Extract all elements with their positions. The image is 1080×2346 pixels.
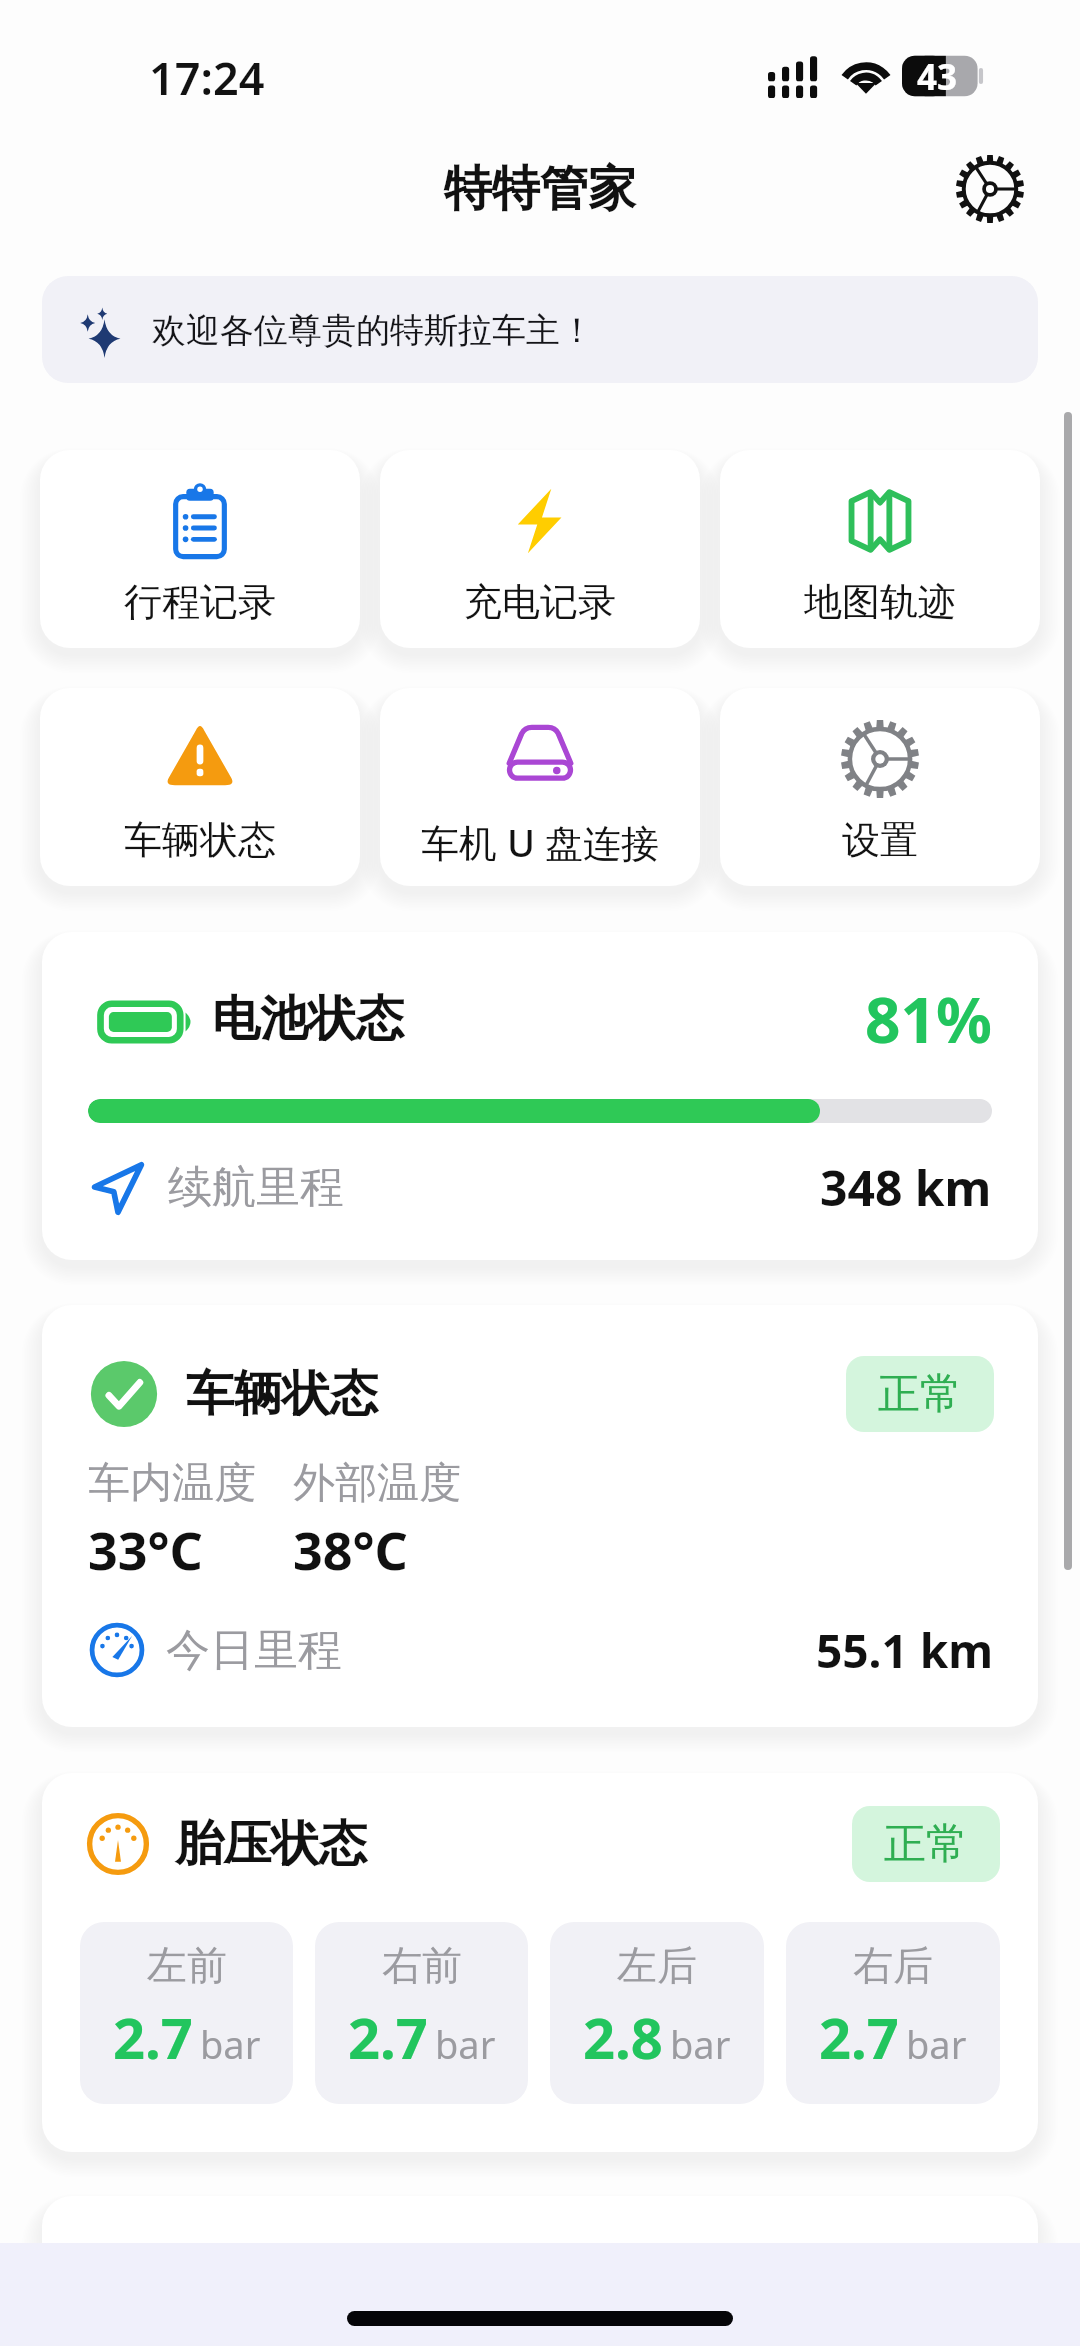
staticText: 43 <box>917 53 958 101</box>
staticText: bar <box>670 2018 731 2070</box>
staticText: 车机 U 盘连接 <box>421 816 659 868</box>
button[interactable]: 充电记录 <box>380 450 700 648</box>
staticText: bar <box>200 2018 261 2070</box>
staticText: bar <box>435 2018 496 2070</box>
staticText: 充电记录 <box>464 578 616 626</box>
staticText: 行程记录 <box>124 578 276 626</box>
staticText: 车内温度 <box>88 1457 256 1510</box>
staticText: 车辆状态 <box>124 816 276 864</box>
staticText: 欢迎各位尊贵的特斯拉车主！ <box>152 309 594 352</box>
staticText: 81% <box>865 977 992 1049</box>
staticText: bar <box>906 2018 967 2070</box>
staticText: 设置 <box>842 816 918 864</box>
staticText: 2.8 <box>583 1999 663 2075</box>
staticText: 17:24 <box>149 47 265 108</box>
button[interactable]: 行程记录 <box>40 450 360 648</box>
button[interactable]: 车机 U 盘连接 <box>380 688 700 886</box>
staticText: 地图轨迹 <box>804 578 956 626</box>
staticText: 车辆状态 <box>186 1364 378 1424</box>
staticText: 左后 <box>617 1940 697 1990</box>
staticText: 胎压状态 <box>175 1814 367 1874</box>
staticText: 正常 <box>884 1818 968 1871</box>
staticText: 右后 <box>853 1940 933 1990</box>
button[interactable]: 欢迎各位尊贵的特斯拉车主！ <box>42 276 1038 383</box>
staticText: 外部温度 <box>293 1457 461 1510</box>
button[interactable]: 地图轨迹 <box>720 450 1040 648</box>
staticText: 今日里程 <box>166 1623 342 1678</box>
staticText: 正常 <box>878 1368 962 1421</box>
staticText: 38°C <box>293 1514 408 1585</box>
button[interactable]: 设置 <box>720 688 1040 886</box>
staticText: 续航里程 <box>168 1160 344 1215</box>
staticText: 2.7 <box>348 1999 428 2075</box>
staticText: 特特管家 <box>444 159 636 219</box>
button[interactable]: Settings <box>943 143 1037 235</box>
staticText: 2.7 <box>113 1999 193 2075</box>
staticText: 2.7 <box>819 1999 899 2075</box>
button[interactable]: 车辆状态 <box>40 688 360 886</box>
staticText: 电池状态 <box>212 989 404 1049</box>
staticText: 左前 <box>147 1940 227 1990</box>
staticText: 55.1 km <box>816 1619 994 1682</box>
staticText: 右前 <box>382 1940 462 1990</box>
staticText: 348 km <box>820 1155 992 1220</box>
staticText: 33°C <box>88 1514 203 1585</box>
